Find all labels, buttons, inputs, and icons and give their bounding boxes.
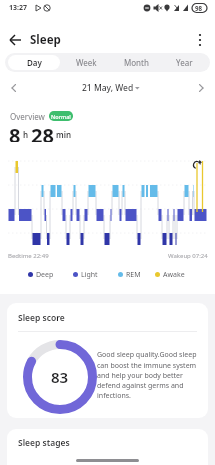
staticText: Day	[27, 57, 42, 68]
staticText: 8	[9, 122, 21, 142]
button[interactable]	[6, 80, 22, 96]
button[interactable]: Light	[73, 269, 98, 280]
button[interactable]: Awake	[155, 269, 185, 280]
staticText: Sleep score	[18, 312, 65, 324]
button[interactable]: Year	[158, 53, 210, 72]
staticText: Good sleep quality.Good sleep can boost …	[97, 350, 203, 400]
staticText: Light	[81, 270, 98, 280]
button[interactable]: Sleep stages	[7, 429, 208, 465]
button[interactable]	[190, 30, 210, 50]
button[interactable]: Month	[110, 53, 162, 72]
staticText: Wakeup 07:24	[168, 252, 208, 260]
staticText: 21 May, Wed	[82, 82, 134, 94]
staticText: Sleep stages	[18, 437, 70, 449]
staticText: Bedtime 22:49	[8, 252, 49, 260]
button[interactable]: Normal	[49, 111, 73, 121]
staticText: 83	[51, 367, 69, 387]
staticText: Normal	[51, 113, 71, 120]
button[interactable]	[193, 80, 209, 96]
staticText: REM	[126, 270, 141, 280]
staticText: Awake	[163, 270, 185, 280]
staticText: Sleep	[30, 32, 61, 48]
staticText: Deep	[36, 270, 54, 280]
staticText: 28	[31, 122, 54, 142]
button[interactable]: Day	[8, 55, 60, 70]
button[interactable]	[4, 30, 28, 50]
staticText: Month	[124, 57, 149, 68]
staticText: 98	[195, 4, 203, 12]
button[interactable]: Deep	[28, 269, 54, 280]
button[interactable]: 21 May, Wed	[70, 80, 146, 95]
staticText: Year	[176, 57, 193, 68]
staticText: Overview	[10, 111, 45, 122]
button[interactable]: REM	[118, 269, 141, 280]
staticText: Week	[76, 57, 97, 68]
staticText: h	[21, 129, 31, 140]
staticText: min	[54, 129, 72, 140]
button[interactable]: Week	[60, 53, 112, 72]
staticText: 13:27	[9, 3, 27, 13]
